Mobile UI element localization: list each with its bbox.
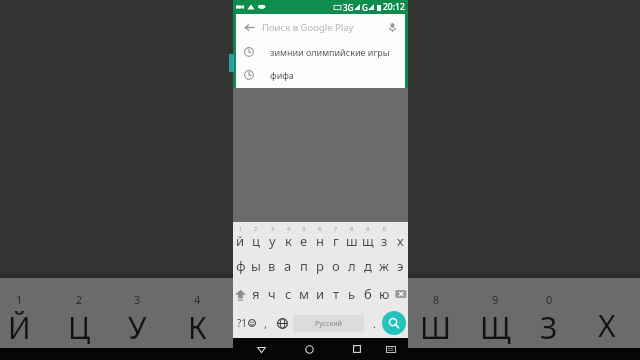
staticText: ы (251, 257, 261, 275)
button[interactable]: Hide keyboard (250, 338, 272, 360)
button[interactable]: Back (236, 14, 262, 40)
button[interactable]: ь (344, 280, 360, 308)
button[interactable]: х (392, 222, 408, 252)
staticText: ч (268, 285, 276, 303)
staticText: З (540, 307, 558, 348)
staticText: я (252, 285, 260, 303)
button[interactable]: м (296, 280, 312, 308)
button[interactable]: а (280, 252, 296, 280)
button[interactable]: ж (376, 252, 392, 280)
button[interactable]: я (248, 280, 264, 308)
staticText: к (285, 232, 292, 250)
button[interactable]: Shift (233, 280, 248, 308)
staticText: р (316, 257, 324, 275)
button[interactable]: 1 (233, 222, 248, 252)
button[interactable]: 4 (280, 222, 296, 252)
staticText: 8 (350, 225, 354, 232)
button[interactable]: э (392, 252, 408, 280)
staticText: н (316, 232, 324, 250)
button[interactable]: . (366, 308, 382, 338)
button[interactable]: 6 (312, 222, 328, 252)
button[interactable]: Backspace (392, 280, 408, 308)
staticText: ш (346, 232, 358, 250)
button[interactable]: ю (376, 280, 392, 308)
button[interactable]: 3 (264, 222, 280, 252)
staticText: У (128, 307, 147, 348)
staticText: 2 (76, 292, 83, 307)
staticText: зимнии олимпийские игры (270, 46, 390, 58)
staticText: К (188, 307, 207, 348)
staticText: щ (362, 232, 374, 250)
staticText: 0 (383, 225, 387, 232)
button[interactable]: ч (264, 280, 280, 308)
staticText: е (300, 232, 308, 250)
button[interactable]: Home (298, 338, 320, 360)
button[interactable]: Back (236, 14, 405, 40)
button[interactable]: фифа (236, 63, 405, 86)
button[interactable]: п (296, 252, 312, 280)
staticText: 1 (16, 292, 23, 307)
staticText: 1 (239, 225, 243, 232)
button[interactable]: б (360, 280, 376, 308)
staticText: у (269, 232, 276, 250)
button[interactable]: ф (233, 252, 248, 280)
button[interactable]: Switch keyboard (380, 338, 402, 360)
button[interactable]: 9 (360, 222, 376, 252)
staticText: 9 (492, 292, 499, 307)
button[interactable]: с (280, 280, 296, 308)
staticText: ж (379, 257, 389, 275)
staticText: и (316, 285, 325, 303)
staticText: Русский (315, 319, 342, 329)
staticText: м (299, 285, 309, 303)
staticText: ф (236, 257, 246, 275)
button[interactable]: р (312, 252, 328, 280)
button[interactable]: 8 (344, 222, 360, 252)
button[interactable]: Voice search (379, 14, 405, 40)
staticText: , (264, 316, 267, 331)
staticText: 0 (546, 292, 553, 307)
staticText: 3 (271, 225, 275, 232)
staticText: 4 (194, 292, 201, 307)
button[interactable]: Change language (273, 308, 291, 338)
button[interactable]: 7 (328, 222, 344, 252)
staticText: 6 (318, 225, 322, 232)
button[interactable]: Русский (293, 315, 364, 332)
staticText: ь (348, 285, 356, 303)
button[interactable]: ?1 (235, 308, 257, 338)
staticText: 3 (134, 292, 141, 307)
staticText: й (236, 232, 245, 250)
button[interactable]: Search (382, 311, 406, 335)
staticText: о (332, 257, 340, 275)
staticText: с (285, 285, 292, 303)
button[interactable]: д (360, 252, 376, 280)
staticText: 9 (366, 225, 370, 232)
staticText: д (364, 257, 372, 275)
button[interactable]: в (264, 252, 280, 280)
button[interactable]: л (344, 252, 360, 280)
staticText: фифа (270, 69, 294, 81)
staticText: Ц (68, 307, 91, 348)
staticText: . (373, 316, 376, 331)
staticText: б (364, 285, 372, 303)
staticText: т (333, 285, 340, 303)
button[interactable]: 5 (296, 222, 312, 252)
button[interactable]: , (257, 308, 273, 338)
staticText: Щ (480, 307, 511, 348)
button[interactable]: ы (248, 252, 264, 280)
staticText: Ш (420, 307, 452, 348)
staticText: Поиск в Google Play (262, 21, 354, 34)
button[interactable]: зимнии олимпийские игры (236, 40, 405, 63)
staticText: 5 (302, 225, 306, 232)
button[interactable]: 2 (248, 222, 264, 252)
staticText: Х (598, 305, 616, 346)
staticText: п (300, 257, 308, 275)
staticText: э (397, 257, 404, 275)
button[interactable]: и (312, 280, 328, 308)
button[interactable]: т (328, 280, 344, 308)
staticText: л (348, 257, 356, 275)
staticText: ?1 (237, 316, 248, 330)
button[interactable]: Recent apps (346, 338, 368, 360)
staticText: 4 (287, 225, 291, 232)
button[interactable]: о (328, 252, 344, 280)
button[interactable]: 0 (376, 222, 392, 252)
